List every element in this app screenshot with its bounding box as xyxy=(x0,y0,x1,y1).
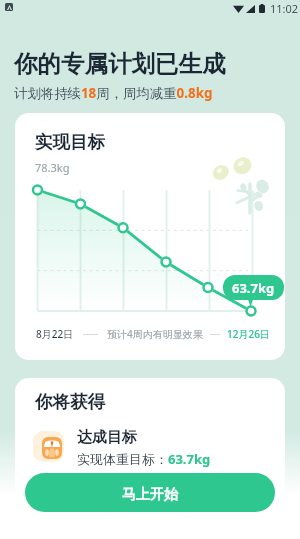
button[interactable]: 马上开始 xyxy=(25,473,275,512)
staticText: 8月22日 xyxy=(36,327,74,341)
button[interactable]: 达成目标 xyxy=(33,426,211,466)
staticText: 达成目标 xyxy=(77,428,137,447)
staticText: 预计4周内有明显效果 xyxy=(107,327,203,341)
staticText: 实现目标 xyxy=(35,131,105,153)
staticText: 63.7kg xyxy=(232,279,275,297)
staticText: 你的专属计划已生成 xyxy=(14,49,226,79)
staticText: 实现体重目标：63.7kg xyxy=(77,450,211,468)
staticText: 11:02 xyxy=(270,1,299,16)
staticText: 计划将持续18周，周均减重0.8kg xyxy=(14,84,213,102)
staticText: 12月26日 xyxy=(227,327,270,341)
staticText: 78.3kg xyxy=(35,160,70,175)
staticText: 你将获得 xyxy=(35,391,105,413)
staticText: 马上开始 xyxy=(122,486,178,504)
